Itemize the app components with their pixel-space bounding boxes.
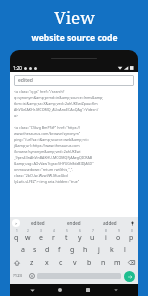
staticText: q=synonym&amp;prmd=in&amp;source=lnms&am… (14, 95, 134, 100)
button[interactable]: 4 (47, 228, 60, 243)
staticText: &amp;usg=AOvVaw1tgsxcSHYUGh8dzBIDJA6D" (14, 161, 134, 166)
staticText: /browse/synonym&amp;ved=2ahUKEwi (14, 149, 134, 154)
button[interactable]: c (54, 256, 68, 269)
button[interactable]: n (96, 256, 110, 269)
staticText: class="2bCUw-WzwVW-MuxGbd (14, 173, 134, 178)
button[interactable]: x (39, 256, 54, 269)
staticText: i (105, 233, 107, 243)
staticText: k (110, 245, 114, 255)
button[interactable]: More suggestions (12, 219, 20, 227)
button[interactable]: 3 (34, 228, 47, 243)
button[interactable]: ended (56, 217, 92, 228)
staticText: lyLwlc-sLFEZ"><img aria-hidden="true" (14, 179, 134, 184)
staticText: u (90, 233, 95, 243)
button[interactable]: edited (20, 217, 56, 228)
staticText: edited (18, 77, 33, 84)
button[interactable]: Home (54, 284, 66, 296)
staticText: 8 (105, 229, 107, 233)
staticText: 5 (66, 229, 68, 233)
staticText: View (54, 6, 95, 29)
button[interactable]: v (68, 256, 82, 269)
button[interactable]: 2 (22, 228, 34, 243)
button[interactable]: g (66, 243, 79, 256)
staticText: o (116, 233, 121, 243)
button[interactable]: m (110, 256, 124, 269)
staticText: <a class="q gs" href="/search? (14, 89, 134, 94)
button[interactable]: 1 (10, 228, 22, 243)
staticText: p (129, 233, 134, 243)
button[interactable]: Shift (10, 256, 24, 269)
staticText: ?123 (13, 273, 23, 279)
staticText: 4 (53, 229, 55, 233)
button[interactable]: Back (26, 284, 38, 296)
staticText: AhVGeIAKHr-MCOMQ_AUoAnoECAoQAg">Video</ (14, 107, 134, 112)
button[interactable]: Backspace (124, 256, 138, 269)
staticText: 7 (92, 229, 94, 233)
button[interactable]: Recent apps (82, 284, 94, 296)
button[interactable]: Voice input (128, 219, 136, 227)
staticText: s (33, 245, 37, 255)
staticText: d (45, 245, 50, 255)
staticText: 1:20 (13, 65, 22, 71)
button[interactable]: Enter (124, 271, 135, 282)
staticText: q (14, 233, 19, 243)
staticText: t (65, 233, 68, 243)
staticText: edited (31, 220, 45, 226)
button[interactable]: a (17, 243, 29, 256)
button[interactable]: z (24, 256, 39, 269)
staticText: 0 (131, 229, 133, 233)
staticText: r (52, 233, 55, 243)
staticText: g (70, 245, 75, 255)
staticText: x (45, 258, 49, 268)
staticText: 2 (27, 229, 29, 233)
button[interactable]: 8 (99, 228, 112, 243)
staticText: z (30, 258, 34, 268)
button[interactable]: added (92, 217, 128, 228)
button[interactable]: 5 (60, 228, 73, 243)
staticText: 3 (40, 229, 42, 233)
staticText: j (98, 245, 100, 255)
button[interactable]: 7 (86, 228, 99, 243)
staticText: c (59, 258, 63, 268)
staticText: onmousedown="return rwt(this,'',''. (14, 167, 134, 172)
staticText: m (114, 258, 121, 268)
staticText: added (103, 220, 117, 226)
button[interactable]: 6 (73, 228, 86, 243)
staticText: n (101, 258, 106, 268)
button[interactable]: l (118, 243, 131, 256)
staticText: a> (14, 113, 134, 118)
staticText: a (21, 245, 25, 255)
staticText: ping="/url?sa=t&amp;source=web&amp;rct= (14, 137, 134, 142)
staticText: > (15, 221, 18, 226)
staticText: www.thesaurus.com/browse/synonym" (14, 131, 134, 136)
staticText: tbm=isi&amp;sa=X&amp;ved=2ahUKEwiZpaucKm (14, 101, 134, 106)
staticText: h (83, 245, 88, 255)
button[interactable]: f (53, 243, 66, 256)
button[interactable]: d (41, 243, 53, 256)
button[interactable]: 9 (112, 228, 125, 243)
staticText: 1 (16, 229, 18, 233)
staticText: f (58, 245, 61, 255)
staticText: l (124, 245, 126, 255)
button[interactable]: k (105, 243, 118, 256)
staticText: 6 (79, 229, 81, 233)
button[interactable]: b (82, 256, 96, 269)
button[interactable]: 0 (125, 228, 138, 243)
button[interactable]: j (92, 243, 105, 256)
button[interactable]: Hide keyboard (110, 284, 122, 296)
staticText: 9 (118, 229, 120, 233)
staticText: v (73, 258, 77, 268)
button[interactable]: s (29, 243, 41, 256)
staticText: e (39, 233, 43, 243)
staticText: y (78, 233, 82, 243)
button[interactable]: h (79, 243, 92, 256)
staticText: w (25, 233, 31, 243)
button[interactable]: Emoji (26, 269, 37, 283)
staticText: <a class="CSkvg BmP5tF" href="https:// (14, 125, 134, 130)
button[interactable]: ?123 (10, 269, 26, 283)
staticText: j&amp;url=https://www.thesaurus.com (14, 143, 134, 148)
staticText: _9pes43nAhVinBAKHU-MCOMQFjAAegQICRAB (14, 155, 134, 160)
button[interactable]: edited (14, 75, 134, 86)
